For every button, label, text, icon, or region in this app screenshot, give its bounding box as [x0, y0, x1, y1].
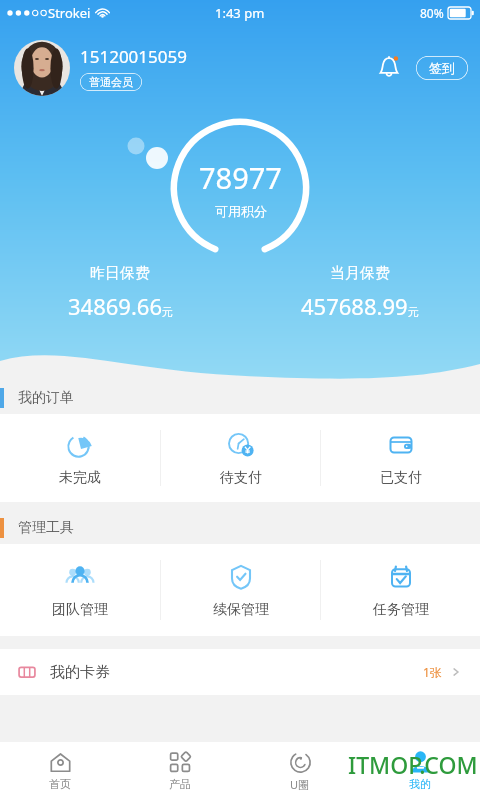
staticText: 当月保费: [330, 264, 390, 283]
staticText: 15120015059: [80, 45, 187, 68]
staticText: 首页: [49, 777, 71, 791]
button[interactable]: 签到: [416, 56, 468, 80]
button[interactable]: 首页: [0, 742, 120, 800]
staticText: 78977: [199, 158, 282, 197]
staticText: 457688.99: [301, 291, 408, 321]
button[interactable]: U圈: [240, 742, 360, 800]
button[interactable]: 昨日保费: [0, 264, 240, 321]
staticText: 1张: [423, 664, 442, 680]
staticText: 签到: [429, 60, 455, 76]
button[interactable]: 我的: [360, 742, 480, 800]
button[interactable]: 待支付: [161, 414, 320, 502]
staticText: 1:43 pm: [215, 4, 265, 22]
staticText: 元: [408, 305, 419, 319]
staticText: 任务管理: [373, 601, 429, 619]
staticText: 可用积分: [215, 203, 267, 219]
button[interactable]: 续保管理: [161, 544, 320, 636]
staticText: 34869.66: [68, 291, 162, 321]
staticText: 昨日保费: [90, 264, 150, 283]
button[interactable]: 团队管理: [0, 544, 160, 636]
staticText: 未完成: [59, 469, 101, 487]
staticText: 80%: [420, 5, 444, 21]
staticText: 产品: [169, 777, 191, 791]
button[interactable]: 我的卡券: [0, 649, 480, 695]
button[interactable]: 已支付: [321, 414, 480, 502]
staticText: 我的: [409, 777, 431, 791]
staticText: 待支付: [220, 469, 262, 487]
staticText: 普通会员: [89, 75, 133, 89]
button[interactable]: 78977: [169, 117, 311, 259]
button[interactable]: 未完成: [0, 414, 160, 502]
button[interactable]: 任务管理: [321, 544, 480, 636]
staticText: 我的订单: [18, 389, 74, 407]
staticText: 我的卡券: [50, 663, 110, 682]
staticText: ITMOP.COM: [348, 749, 478, 780]
button[interactable]: 产品: [120, 742, 240, 800]
staticText: 续保管理: [213, 601, 269, 619]
staticText: 管理工具: [18, 519, 74, 537]
staticText: 元: [162, 305, 173, 319]
button[interactable]: Profile photo: [14, 40, 70, 96]
button[interactable]: 当月保费: [240, 264, 480, 321]
staticText: 团队管理: [52, 601, 108, 619]
staticText: 已支付: [380, 469, 422, 487]
button[interactable]: 普通会员: [80, 73, 142, 91]
staticText: Strokei: [48, 4, 91, 22]
button[interactable]: Notifications: [372, 51, 406, 85]
staticText: U圈: [290, 777, 310, 792]
